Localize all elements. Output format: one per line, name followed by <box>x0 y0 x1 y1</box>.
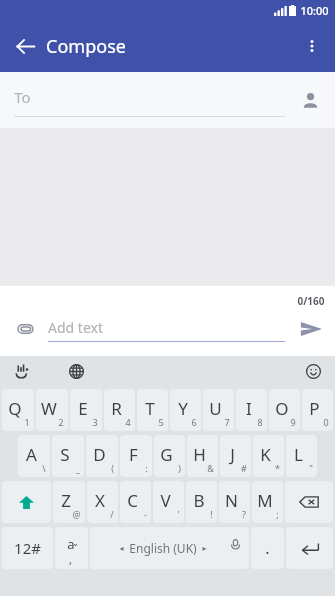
staticText: & <box>207 462 214 474</box>
button[interactable]: Z <box>53 481 85 523</box>
button[interactable]: A <box>18 435 50 477</box>
staticText: * <box>275 462 280 474</box>
button[interactable]: W <box>36 389 68 431</box>
button[interactable]: 12# <box>2 527 53 569</box>
staticText: English (UK) <box>129 540 197 556</box>
staticText: 9 <box>290 416 296 428</box>
staticText: 5 <box>158 416 164 428</box>
staticText: - <box>144 508 147 520</box>
button[interactable]: To <box>14 83 285 117</box>
button[interactable]: M <box>252 481 283 523</box>
staticText: S <box>60 443 70 466</box>
button[interactable]: Add contact <box>291 81 329 119</box>
staticText: Y <box>178 397 188 420</box>
staticText: , <box>69 552 72 567</box>
staticText: / <box>110 508 114 520</box>
staticText: 8 <box>257 416 263 428</box>
staticText: H <box>193 443 206 466</box>
button[interactable]: More options <box>293 27 331 65</box>
button[interactable]: Shift <box>2 481 51 523</box>
button[interactable]: U <box>203 389 234 431</box>
staticText: N <box>225 489 238 512</box>
staticText: O <box>275 397 289 420</box>
staticText: L <box>294 443 303 466</box>
button[interactable]: D <box>86 435 118 477</box>
button[interactable]: Enter <box>286 527 333 569</box>
button[interactable]: Change language <box>62 357 90 385</box>
button[interactable]: L <box>286 435 317 477</box>
button[interactable]: Send <box>291 309 331 349</box>
button[interactable]: O <box>269 389 300 431</box>
staticText: E <box>78 397 88 420</box>
button[interactable]: C <box>120 481 151 523</box>
staticText: ˇ <box>73 542 78 556</box>
button[interactable]: K <box>253 435 284 477</box>
staticText: 0/160 <box>297 294 325 308</box>
button[interactable]: B <box>186 481 217 523</box>
button[interactable]: . <box>251 527 284 569</box>
staticText: a <box>67 535 75 553</box>
staticText: 3 <box>92 416 98 428</box>
button[interactable]: Q <box>2 389 34 431</box>
staticText: ' <box>177 508 180 520</box>
button[interactable]: Attach <box>8 312 42 346</box>
button[interactable]: H <box>187 435 218 477</box>
staticText: _ <box>76 462 80 474</box>
button[interactable]: F <box>120 435 152 477</box>
staticText: Q <box>8 397 22 420</box>
staticText: 1 <box>24 416 30 428</box>
button[interactable]: Y <box>170 389 201 431</box>
staticText: G <box>160 443 173 466</box>
button[interactable]: E <box>70 389 102 431</box>
button[interactable]: R <box>104 389 135 431</box>
button[interactable]: P <box>302 389 333 431</box>
staticText: R <box>111 397 122 420</box>
button[interactable]: S <box>52 435 84 477</box>
button[interactable]: N <box>219 481 250 523</box>
staticText: C <box>127 489 138 512</box>
button[interactable]: T <box>137 389 168 431</box>
staticText: K <box>260 443 271 466</box>
staticText: 6 <box>191 416 197 428</box>
button[interactable]: a <box>55 527 88 569</box>
staticText: I <box>246 397 252 420</box>
staticText: " <box>309 462 313 474</box>
button[interactable]: Backspace <box>285 481 333 523</box>
staticText: X <box>95 489 105 512</box>
staticText: ; <box>276 508 279 520</box>
button[interactable]: Back <box>6 27 44 65</box>
staticText: \ <box>42 462 46 474</box>
button[interactable]: Voice input <box>8 357 36 385</box>
staticText: ( <box>111 462 114 474</box>
button[interactable]: V <box>153 481 184 523</box>
staticText: T <box>145 397 155 420</box>
staticText: ? <box>242 508 246 520</box>
staticText: F <box>129 443 138 466</box>
staticText: B <box>193 489 205 512</box>
staticText: Add text <box>48 318 103 337</box>
staticText: ) <box>178 462 181 474</box>
staticText: 7 <box>224 416 230 428</box>
staticText: M <box>257 489 273 512</box>
staticText: 12# <box>14 538 41 558</box>
button[interactable]: G <box>154 435 185 477</box>
staticText: D <box>93 443 106 466</box>
staticText: To <box>14 87 31 107</box>
staticText: @ <box>72 508 81 520</box>
button[interactable]: J <box>220 435 251 477</box>
button[interactable]: X <box>87 481 118 523</box>
staticText: Z <box>61 489 71 512</box>
staticText: 2 <box>58 416 64 428</box>
staticText: . <box>265 537 270 559</box>
button[interactable]: Add text <box>48 316 285 342</box>
staticText: Compose <box>46 34 126 59</box>
staticText: ◂ <box>119 544 124 553</box>
staticText: : <box>145 462 148 474</box>
button[interactable]: I <box>236 389 267 431</box>
button[interactable]: Space <box>90 527 249 569</box>
button[interactable]: Emoji <box>299 357 327 385</box>
staticText: P <box>309 397 320 420</box>
staticText: # <box>241 462 247 474</box>
staticText: ▸ <box>202 544 207 553</box>
staticText: J <box>230 443 235 466</box>
